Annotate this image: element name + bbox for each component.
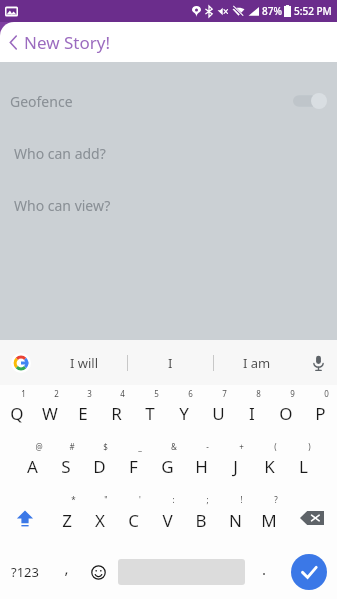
button[interactable]: . (248, 545, 280, 599)
button[interactable]: Backspace (286, 491, 337, 545)
button[interactable]: 6 (167, 385, 201, 438)
button[interactable]: ) (286, 438, 320, 491)
button[interactable]: Space (114, 545, 248, 599)
staticText: G (161, 455, 174, 478)
staticText: 8 (256, 388, 261, 399)
button[interactable]: ! (218, 491, 252, 545)
button[interactable]: - (184, 438, 218, 491)
button[interactable]: 9 (269, 385, 303, 438)
staticText: 5:52 PM (294, 4, 332, 18)
button[interactable]: , (50, 545, 82, 599)
staticText: D (93, 455, 106, 478)
staticText: ( (274, 441, 277, 452)
button[interactable]: Geofence toggle (293, 93, 327, 109)
staticText: ? (274, 494, 278, 505)
staticText: - (206, 441, 209, 452)
button[interactable]: Shift (0, 491, 50, 545)
staticText: 87% (262, 4, 282, 18)
button[interactable]: & (150, 438, 184, 491)
staticText: & (171, 441, 177, 452)
staticText: M (261, 509, 277, 532)
staticText: New Story! (24, 31, 110, 54)
staticText: N (229, 509, 242, 532)
button[interactable]: 5 (133, 385, 167, 438)
staticText: 2 (54, 388, 59, 399)
staticText: 7 (222, 388, 227, 399)
button[interactable]: Done (280, 545, 337, 599)
button[interactable]: I am (214, 340, 299, 385)
button[interactable]: 4 (99, 385, 133, 438)
button[interactable]: 3 (66, 385, 99, 438)
staticText: ! (240, 494, 243, 505)
staticText: Who can add? (14, 144, 106, 163)
button[interactable]: Google (0, 340, 42, 385)
staticText: 0 (324, 388, 329, 399)
staticText: S (61, 455, 71, 478)
staticText: + (239, 441, 244, 452)
staticText: 1 (21, 388, 26, 399)
staticText: A (27, 455, 38, 478)
staticText: R (111, 402, 122, 425)
staticText: J (233, 455, 238, 478)
button[interactable]: _ (116, 438, 150, 491)
staticText: ) (308, 441, 311, 452)
staticText: # (69, 441, 75, 452)
button[interactable]: ; (184, 491, 218, 545)
button[interactable]: 8 (235, 385, 269, 438)
staticText: 9 (290, 388, 295, 399)
staticText: " (104, 494, 108, 505)
button[interactable]: @ (16, 438, 49, 491)
button[interactable]: ? (252, 491, 286, 545)
staticText: I (249, 402, 255, 425)
staticText: @ (35, 441, 43, 452)
other: Back (10, 36, 17, 49)
staticText: X (95, 509, 105, 532)
staticText: 6 (188, 388, 193, 399)
staticText: ' (139, 494, 141, 505)
button[interactable]: Voice input (299, 340, 337, 385)
staticText: I am (243, 354, 271, 372)
button[interactable]: 7 (201, 385, 235, 438)
button[interactable]: I will (42, 340, 127, 385)
button[interactable]: Geofence (0, 86, 337, 116)
staticText: Q (10, 402, 24, 425)
staticText: I will (70, 354, 99, 372)
button[interactable]: ( (252, 438, 286, 491)
button[interactable]: ' (116, 491, 150, 545)
staticText: , (64, 558, 69, 578)
button[interactable]: I (128, 340, 213, 385)
staticText: U (212, 402, 225, 425)
staticText: K (264, 455, 275, 478)
button[interactable]: Back (0, 22, 122, 62)
staticText: F (129, 455, 138, 478)
staticText: 5 (154, 388, 159, 399)
staticText: Z (62, 509, 72, 532)
staticText: Who can view? (14, 196, 111, 215)
button[interactable]: 1 (0, 385, 33, 438)
staticText: T (145, 402, 155, 425)
button[interactable]: Who can add? (0, 138, 337, 168)
button[interactable]: * (50, 491, 83, 545)
button[interactable]: Who can view? (0, 190, 337, 220)
staticText: I (168, 354, 173, 372)
button[interactable]: 2 (33, 385, 66, 438)
staticText: V (162, 509, 173, 532)
button[interactable]: # (49, 438, 82, 491)
staticText: L (299, 455, 308, 478)
staticText: ; (206, 494, 209, 505)
staticText: $ (103, 441, 108, 452)
staticText: : (172, 494, 175, 505)
button[interactable]: 0 (303, 385, 337, 438)
button[interactable]: $ (82, 438, 116, 491)
button[interactable]: Emoji (82, 545, 114, 599)
staticText: Y (179, 402, 189, 425)
button[interactable]: ?123 (0, 545, 50, 599)
button[interactable]: : (150, 491, 184, 545)
button[interactable]: " (83, 491, 116, 545)
staticText: H (195, 455, 208, 478)
staticText: * (71, 494, 76, 505)
button[interactable]: + (218, 438, 252, 491)
staticText: ?123 (11, 563, 39, 581)
staticText: B (195, 509, 207, 532)
staticText: _ (138, 441, 142, 452)
